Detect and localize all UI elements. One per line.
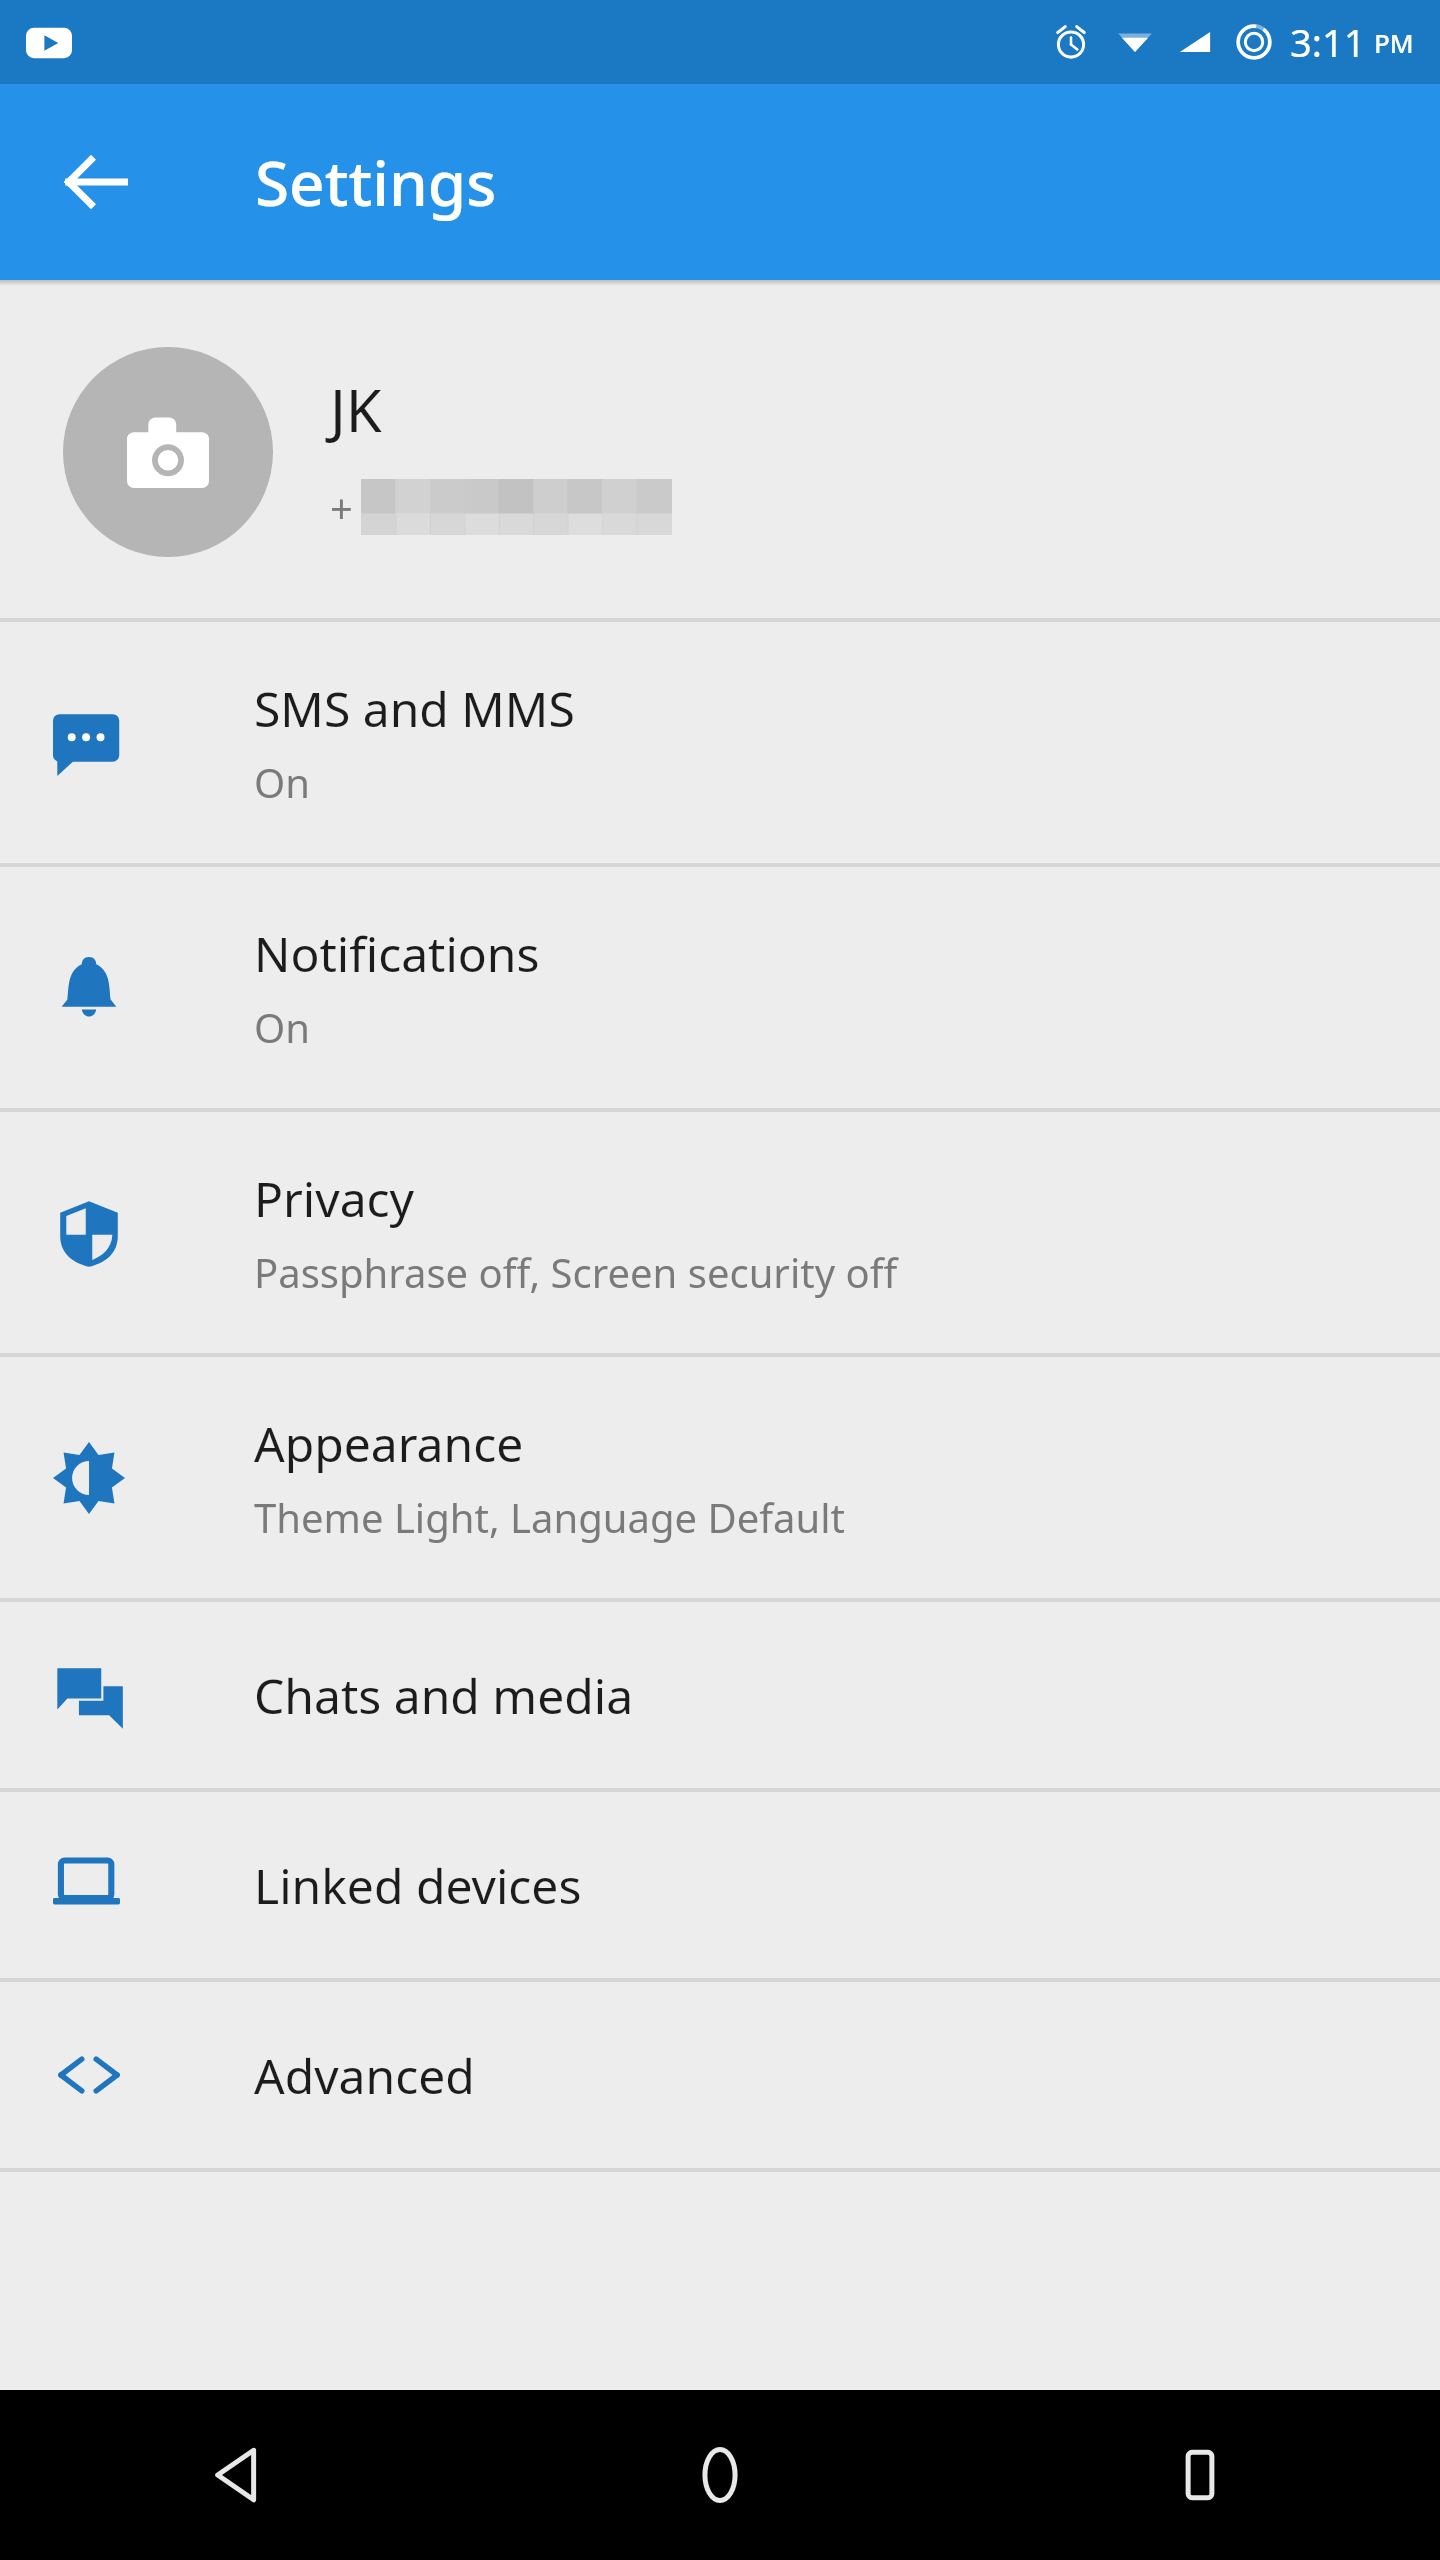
button[interactable]: Home bbox=[480, 2390, 960, 2560]
button[interactable]: JK bbox=[0, 286, 1440, 618]
button[interactable]: Back bbox=[0, 2390, 480, 2560]
staticText: Linked devices bbox=[254, 1853, 582, 1918]
staticText: Appearance bbox=[254, 1411, 524, 1476]
button[interactable]: Recents bbox=[960, 2390, 1440, 2560]
staticText: PM bbox=[1374, 25, 1414, 60]
staticText: + bbox=[330, 480, 353, 534]
button[interactable]: Notifications bbox=[0, 867, 1440, 1108]
button[interactable]: Chats and media bbox=[0, 1602, 1440, 1788]
staticText: Advanced bbox=[254, 2043, 475, 2108]
staticText: 3:11 bbox=[1290, 16, 1366, 68]
staticText: Chats and media bbox=[254, 1663, 634, 1728]
staticText: On bbox=[254, 1000, 310, 1054]
button[interactable]: Appearance bbox=[0, 1357, 1440, 1598]
staticText: Notifications bbox=[254, 921, 540, 986]
staticText: Settings bbox=[255, 140, 497, 224]
staticText: SMS and MMS bbox=[254, 676, 575, 741]
button[interactable]: Linked devices bbox=[0, 1792, 1440, 1978]
staticText: Privacy bbox=[254, 1166, 415, 1231]
button[interactable]: SMS and MMS bbox=[0, 622, 1440, 863]
staticText: Passphrase off, Screen security off bbox=[254, 1245, 898, 1299]
button[interactable]: Advanced bbox=[0, 1982, 1440, 2168]
staticText: JK bbox=[330, 370, 382, 449]
staticText: Theme Light, Language Default bbox=[254, 1490, 845, 1544]
button[interactable]: Privacy bbox=[0, 1112, 1440, 1353]
button[interactable]: Back bbox=[40, 126, 152, 238]
staticText: On bbox=[254, 755, 310, 809]
